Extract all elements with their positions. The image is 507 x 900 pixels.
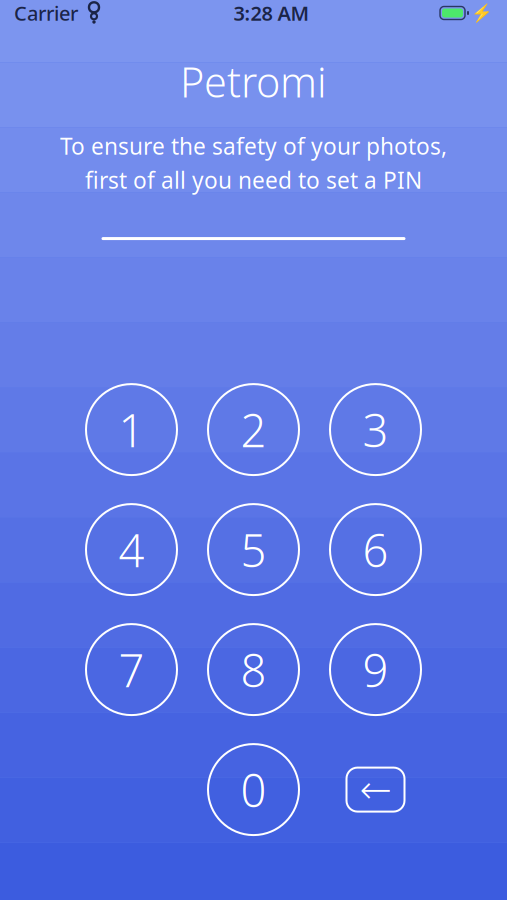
button[interactable]: 1 bbox=[86, 384, 177, 475]
button[interactable]: 5 bbox=[208, 504, 299, 595]
button[interactable]: 8 bbox=[208, 624, 299, 715]
staticText: 3:28 AM bbox=[233, 0, 309, 26]
staticText: ← bbox=[359, 768, 391, 811]
staticText: 1 bbox=[118, 399, 144, 460]
button[interactable]: 2 bbox=[208, 384, 299, 475]
staticText: 0 bbox=[240, 759, 266, 820]
staticText: Carrier bbox=[14, 0, 78, 26]
button[interactable]: 9 bbox=[330, 624, 421, 715]
staticText: 8 bbox=[240, 639, 266, 700]
button[interactable]: 0 bbox=[208, 744, 299, 835]
staticText: Petromi bbox=[180, 54, 327, 109]
button[interactable]: 3 bbox=[330, 384, 421, 475]
staticText: 3 bbox=[362, 399, 388, 460]
staticText: 4 bbox=[118, 519, 144, 580]
staticText: 2 bbox=[240, 399, 266, 460]
staticText: 9 bbox=[362, 639, 388, 700]
button[interactable]: 7 bbox=[86, 624, 177, 715]
button[interactable]: 6 bbox=[330, 504, 421, 595]
staticText: 7 bbox=[118, 639, 144, 700]
staticText: To ensure the safety of your photos, bbox=[60, 131, 447, 161]
staticText: 5 bbox=[240, 519, 266, 580]
staticText: 6 bbox=[362, 519, 388, 580]
button[interactable]: 4 bbox=[86, 504, 177, 595]
button[interactable]: Delete bbox=[330, 744, 421, 835]
staticText: ⚡ bbox=[471, 3, 493, 23]
staticText: first of all you need to set a PIN bbox=[85, 165, 422, 195]
